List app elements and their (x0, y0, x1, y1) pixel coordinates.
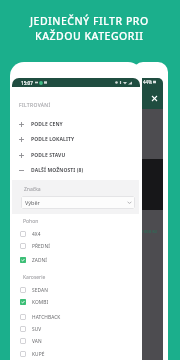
button[interactable]: VAN (12, 335, 140, 347)
staticText: KUPÉ (32, 351, 45, 358)
staticText: KAŽDOU KATEGORII (35, 29, 144, 43)
staticText: SEDAN (32, 287, 48, 294)
button[interactable]: KOMBI (12, 296, 140, 308)
button[interactable]: KUPÉ (12, 348, 140, 360)
button[interactable]: HATCHBACK (12, 311, 140, 323)
staticText: DALŠÍ MOŽNOSTI (8) (31, 167, 84, 174)
staticText: 15:07 (21, 80, 33, 86)
staticText: PODLE STAVU (31, 152, 66, 159)
button[interactable]: SUV (12, 323, 140, 335)
staticText: Výběr (25, 199, 40, 206)
button[interactable]: ZADNÍ (12, 254, 140, 266)
button[interactable]: 4X4 (12, 228, 140, 240)
staticText: Pohon (23, 218, 39, 225)
staticText: PODLE CENY (31, 121, 63, 128)
staticText: SUV (32, 326, 42, 333)
staticText: 44% (143, 79, 152, 85)
button[interactable]: PŘEDNÍ (12, 240, 140, 252)
staticText: PŘEDNÍ (32, 243, 50, 250)
staticText: ZADNÍ (32, 257, 48, 264)
staticText: Karoserie (23, 274, 46, 281)
button[interactable]: PODLE LOKALITY (12, 132, 140, 146)
staticText: FILTROVÁNÍ (19, 102, 51, 109)
staticText: 00 000 Kč (138, 229, 158, 235)
staticText: JEDINEČNÝ FILTR PRO (30, 14, 149, 28)
button[interactable]: Close (148, 92, 160, 104)
button[interactable]: Výběr (21, 196, 135, 209)
staticText: Značka (24, 186, 41, 193)
staticText: KOMBI (32, 299, 49, 306)
staticText: VAN (32, 338, 42, 345)
button[interactable]: SEDAN (12, 284, 140, 296)
button[interactable]: DALŠÍ MOŽNOSTI (8) (12, 163, 140, 177)
staticText: HATCHBACK (32, 314, 61, 321)
staticText: 4X4 (32, 231, 41, 238)
button[interactable]: PODLE CENY (12, 117, 140, 131)
staticText: PODLE LOKALITY (31, 136, 75, 143)
button[interactable]: PODLE STAVU (12, 148, 140, 162)
